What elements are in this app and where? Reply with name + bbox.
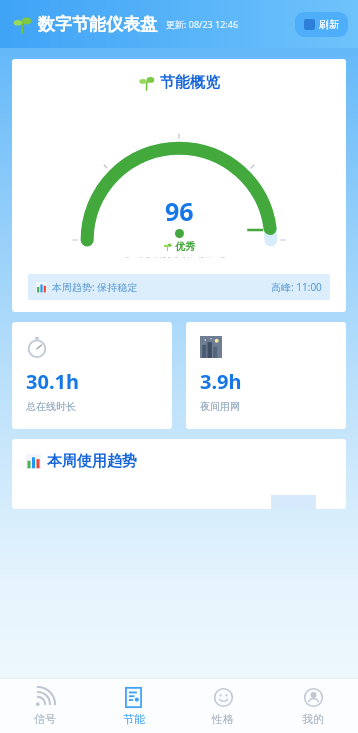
staticText: 本周趋势: 保持稳定 (52, 280, 138, 294)
other: 信号 (34, 687, 55, 708)
other: 我的 (303, 687, 324, 708)
staticText: 96 (165, 194, 194, 228)
staticText: 3.9h (200, 368, 242, 395)
staticText: 30.1h (26, 368, 79, 395)
other: 性格 (213, 687, 234, 708)
staticText: 节能概览 (160, 73, 220, 92)
staticText: 本周使用趋势 (47, 452, 137, 471)
button[interactable]: 性格 (178, 687, 268, 726)
staticText: 更新: 08/23 12:46 (166, 18, 239, 30)
staticText: 我的 (302, 712, 324, 726)
staticText: 节能 (123, 712, 145, 726)
button[interactable]: 3.9h (186, 322, 346, 429)
staticText: 优秀 (175, 240, 195, 253)
other: 节能 (123, 687, 144, 708)
staticText: 你的数字生活非常节能, 保持得很好! (124, 256, 235, 258)
staticText: 性格 (212, 712, 234, 726)
button[interactable]: 我的 (268, 687, 358, 726)
button[interactable]: 刷新 (295, 12, 348, 37)
button[interactable]: 信号 (0, 687, 89, 726)
staticText: 数字节能仪表盘 (38, 14, 157, 35)
staticText: 信号 (34, 712, 56, 726)
button[interactable]: 节能 (89, 687, 178, 726)
staticText: 夜间用网 (200, 400, 240, 413)
staticText: 总在线时长 (26, 400, 76, 413)
button[interactable]: 30.1h (12, 322, 172, 429)
staticText: 高峰: 11:00 (271, 280, 322, 294)
staticText: 刷新 (319, 18, 339, 31)
